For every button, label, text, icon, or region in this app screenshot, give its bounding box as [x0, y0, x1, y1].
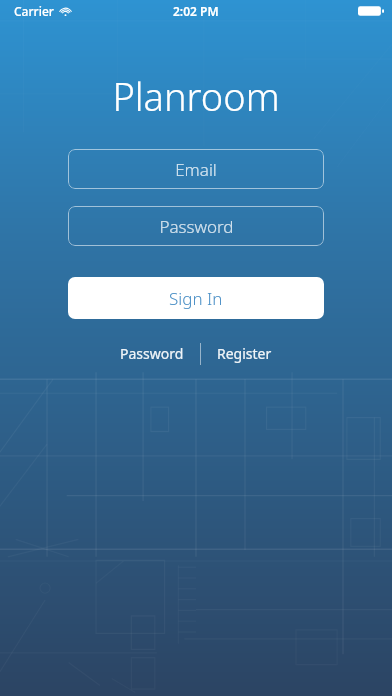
- staticText: Register: [217, 344, 272, 363]
- button[interactable]: Register: [201, 339, 288, 368]
- button[interactable]: Password: [104, 339, 200, 368]
- staticText: 2:02 PM: [173, 3, 219, 19]
- button[interactable]: Email: [68, 149, 324, 189]
- staticText: Email: [175, 158, 217, 181]
- other: Battery full: [358, 5, 384, 17]
- staticText: Carrier: [14, 3, 54, 19]
- staticText: Password: [120, 344, 184, 363]
- button[interactable]: Password: [68, 206, 324, 246]
- button[interactable]: Sign In: [68, 277, 324, 319]
- staticText: Planroom: [0, 70, 392, 122]
- staticText: Password: [159, 215, 234, 238]
- staticText: Sign In: [169, 287, 223, 310]
- other: Wi-Fi signal: [59, 5, 72, 18]
